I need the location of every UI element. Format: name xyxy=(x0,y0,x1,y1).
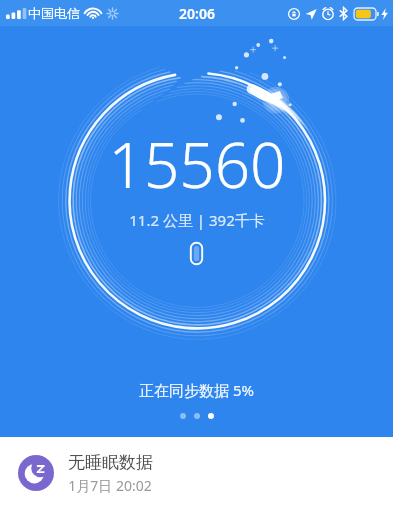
button[interactable]: Connected band xyxy=(190,242,203,265)
staticText: 15560 xyxy=(108,122,286,206)
staticText: 20:06 xyxy=(179,4,215,23)
staticText: 1月7日 20:02 xyxy=(68,476,152,495)
button[interactable]: 无睡眠数据 xyxy=(0,437,393,509)
staticText: 正在同步数据 5% xyxy=(139,380,254,400)
staticText: 无睡眠数据 xyxy=(68,452,153,473)
staticText: 中国电信 xyxy=(28,5,80,21)
staticText: 11.2 公里 | 392千卡 xyxy=(129,210,265,230)
